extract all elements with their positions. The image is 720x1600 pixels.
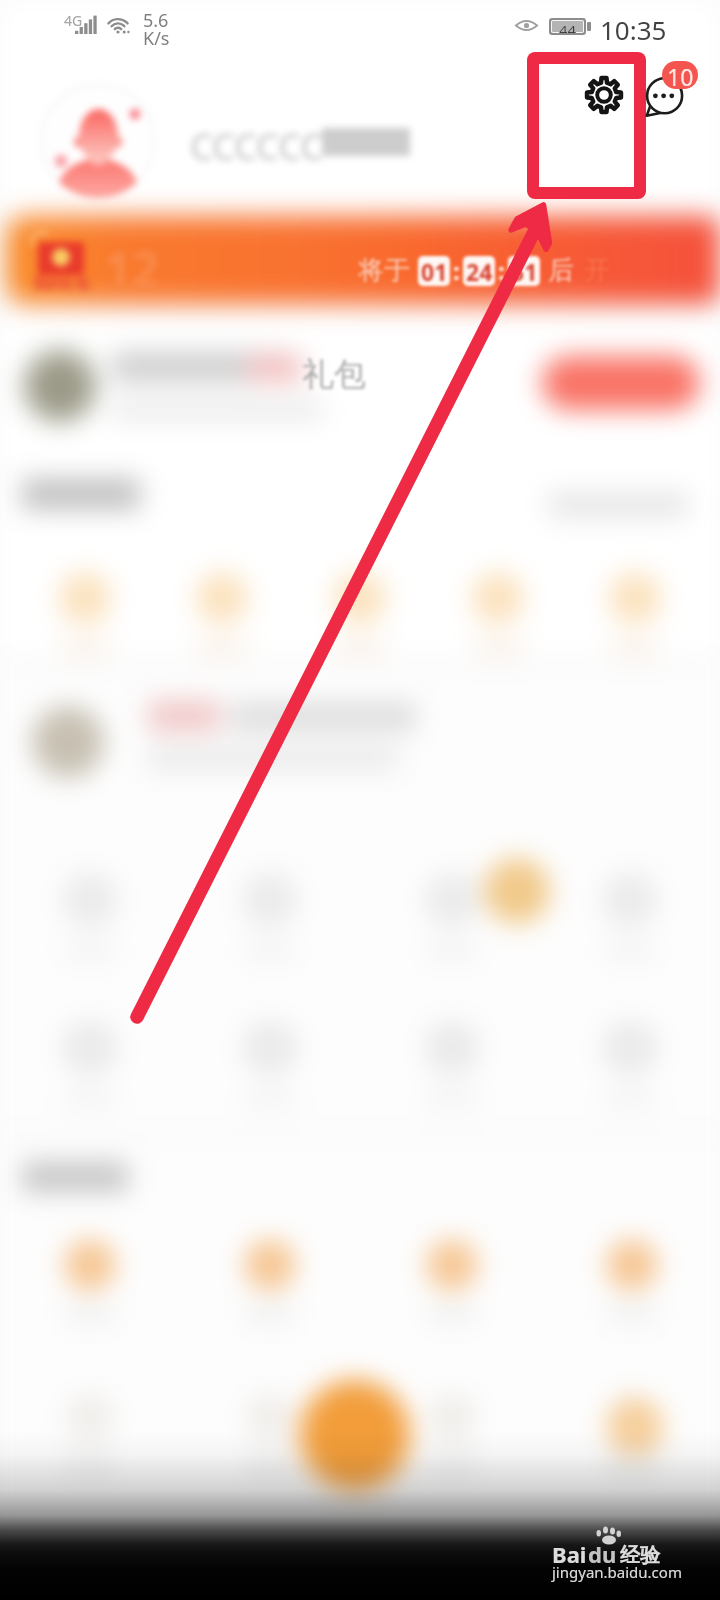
button[interactable]: [609, 572, 661, 624]
button[interactable]: [606, 1239, 658, 1291]
button[interactable]: [242, 872, 298, 928]
staticText: du: [588, 1539, 617, 1569]
staticText: 后: [548, 254, 574, 287]
button[interactable]: [62, 1020, 118, 1076]
staticText: 51: [511, 256, 538, 286]
staticText: 01: [421, 256, 448, 286]
staticText: 4G: [64, 11, 83, 30]
button[interactable]: Messages: [640, 70, 694, 124]
button[interactable]: [608, 1394, 656, 1442]
button[interactable]: [242, 1020, 298, 1076]
staticText: 10: [667, 61, 694, 89]
staticText: 开: [584, 254, 610, 287]
button[interactable]: Settings: [578, 69, 630, 121]
staticText: 44: [559, 20, 577, 33]
button[interactable]: [424, 872, 480, 928]
button[interactable]: [426, 1239, 478, 1291]
staticText: jingyan.baidu.com: [552, 1562, 682, 1582]
button[interactable]: [244, 1239, 296, 1291]
staticText: 将于: [358, 254, 410, 287]
button[interactable]: [602, 872, 658, 928]
staticText: 礼包: [302, 354, 366, 394]
staticText: 经验: [620, 1543, 660, 1568]
staticText: 5.6: [143, 8, 169, 33]
staticText: Bai: [552, 1539, 587, 1569]
staticText: :: [453, 254, 460, 287]
button[interactable]: [424, 1020, 480, 1076]
button[interactable]: [602, 1020, 658, 1076]
staticText: 我的红包: [33, 275, 89, 293]
staticText: :: [498, 254, 505, 287]
button[interactable]: [246, 1394, 294, 1442]
button[interactable]: [334, 572, 386, 624]
button[interactable]: [472, 572, 524, 624]
button[interactable]: [64, 1239, 116, 1291]
button[interactable]: [542, 356, 700, 410]
staticText: K/s: [143, 26, 170, 51]
button[interactable]: [59, 572, 111, 624]
button[interactable]: [62, 872, 118, 928]
staticText: 24: [466, 256, 493, 286]
staticText: 12: [104, 236, 159, 301]
button[interactable]: [196, 572, 248, 624]
staticText: CCCCCC: [190, 122, 323, 171]
staticText: 10:35: [600, 12, 667, 47]
